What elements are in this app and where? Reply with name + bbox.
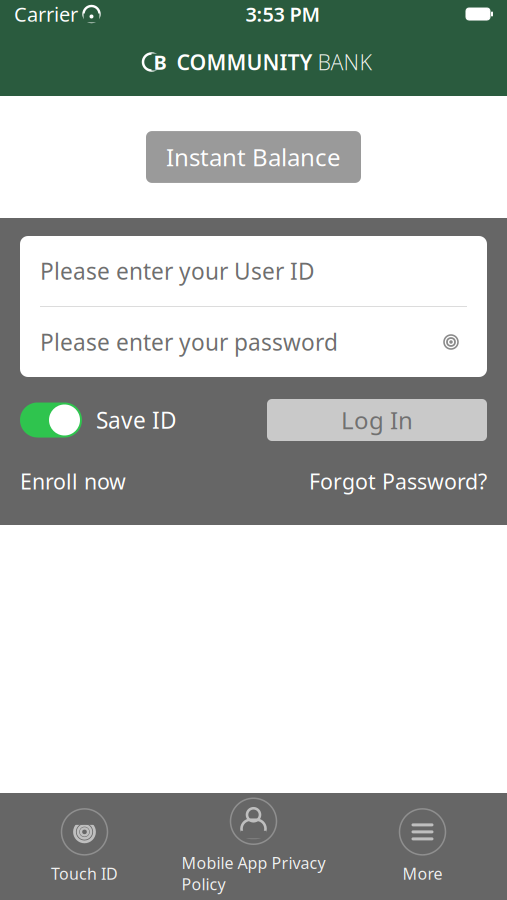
staticText: BANK [317, 48, 372, 76]
staticText: More [402, 863, 442, 884]
button[interactable]: Save ID [20, 402, 177, 437]
staticText: 3:53 PM [245, 1, 320, 27]
staticText: COMMUNITY [176, 48, 312, 76]
button[interactable]: Show password [435, 329, 467, 355]
button[interactable]: Mobile App Privacy Policy [169, 790, 338, 900]
staticText: Mobile App Privacy Policy [181, 852, 325, 895]
staticText: Log In [341, 404, 413, 436]
staticText: Please enter your password [40, 327, 338, 357]
staticText: B [153, 49, 166, 75]
staticText: Touch ID [51, 863, 118, 884]
button[interactable]: Instant Balance [146, 131, 361, 183]
staticText: Instant Balance [166, 141, 341, 173]
button[interactable]: More [338, 801, 507, 892]
staticText: Save ID [96, 405, 177, 435]
staticText: Forgot Password? [309, 467, 487, 495]
button[interactable]: Enroll now [20, 467, 126, 495]
staticText: Please enter your User ID [40, 256, 315, 286]
button[interactable]: Touch ID [0, 801, 169, 892]
button[interactable]: Log In [267, 399, 487, 441]
staticText: Enroll now [20, 467, 126, 495]
staticText: Carrier [14, 1, 78, 27]
button[interactable]: Forgot Password? [309, 467, 487, 495]
